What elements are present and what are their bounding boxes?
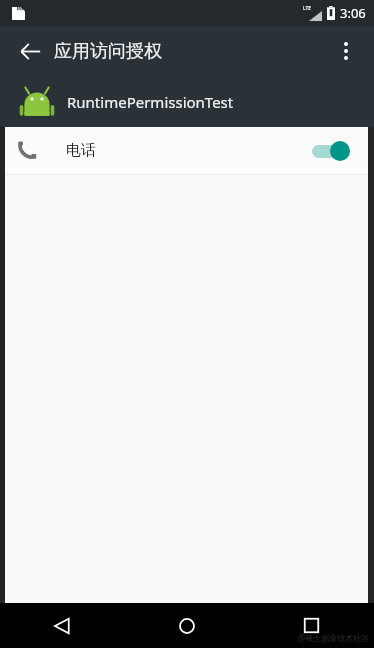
button[interactable]: Phone permission toggle xyxy=(310,137,350,165)
button[interactable]: Recent apps xyxy=(249,603,374,648)
staticText: RuntimePermissionTest xyxy=(67,92,234,112)
staticText: LTE xyxy=(303,5,312,12)
button[interactable]: Back xyxy=(10,31,50,71)
staticText: 3:06 xyxy=(340,4,366,22)
button[interactable]: More options xyxy=(326,31,366,71)
button[interactable]: RuntimePermissionTest xyxy=(0,76,374,127)
button[interactable]: Back xyxy=(0,603,124,648)
staticText: @稀土掘金技术社区 xyxy=(298,632,370,643)
staticText: 应用访问授权 xyxy=(54,40,162,63)
staticText: 电话 xyxy=(66,141,96,160)
button[interactable]: Home xyxy=(124,603,249,648)
button[interactable]: 电话 xyxy=(5,127,368,174)
